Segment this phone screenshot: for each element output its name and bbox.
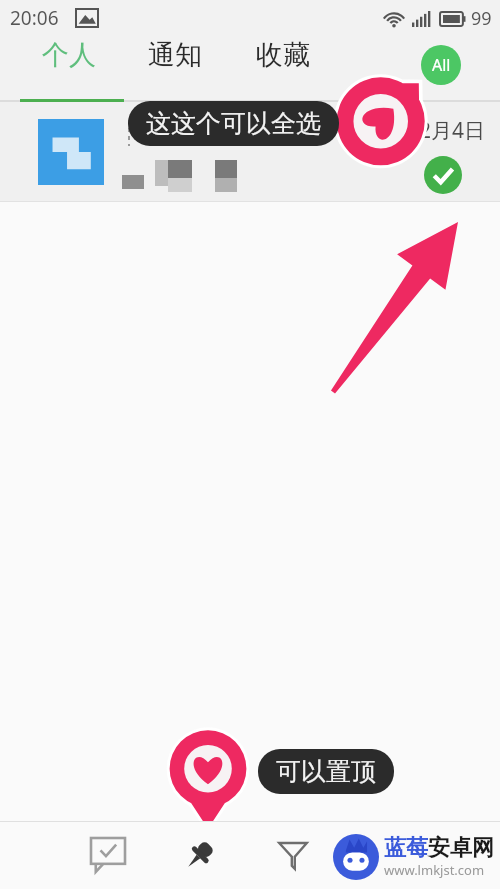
button[interactable]: Tasks	[82, 829, 134, 881]
staticText: www.lmkjst.com	[384, 861, 485, 879]
staticText: 安卓网	[428, 834, 494, 862]
staticText: 20:06	[10, 5, 59, 31]
staticText: 这这个可以全选	[146, 108, 321, 139]
button[interactable]: 收藏	[250, 32, 316, 78]
button[interactable]: Selected	[424, 156, 462, 194]
staticText: 收藏	[256, 38, 310, 72]
button[interactable]: Filter	[267, 829, 319, 881]
staticText: 通知	[148, 38, 202, 72]
staticText: All	[432, 54, 451, 76]
button[interactable]: Pin	[174, 829, 226, 881]
staticText: 个人	[42, 38, 96, 72]
button[interactable]: 通知	[142, 32, 208, 78]
staticText: 2月4日	[419, 116, 486, 145]
staticText: 99	[471, 6, 492, 31]
button[interactable]: All select	[421, 45, 461, 85]
staticText: 可以置顶	[276, 756, 376, 787]
button[interactable]: 个人	[36, 32, 102, 78]
button[interactable]: 2月4日	[0, 102, 500, 202]
staticText: 蓝莓	[384, 834, 428, 862]
button[interactable]: 这这个可以全选	[128, 101, 339, 146]
button[interactable]: 可以置顶	[258, 749, 394, 794]
